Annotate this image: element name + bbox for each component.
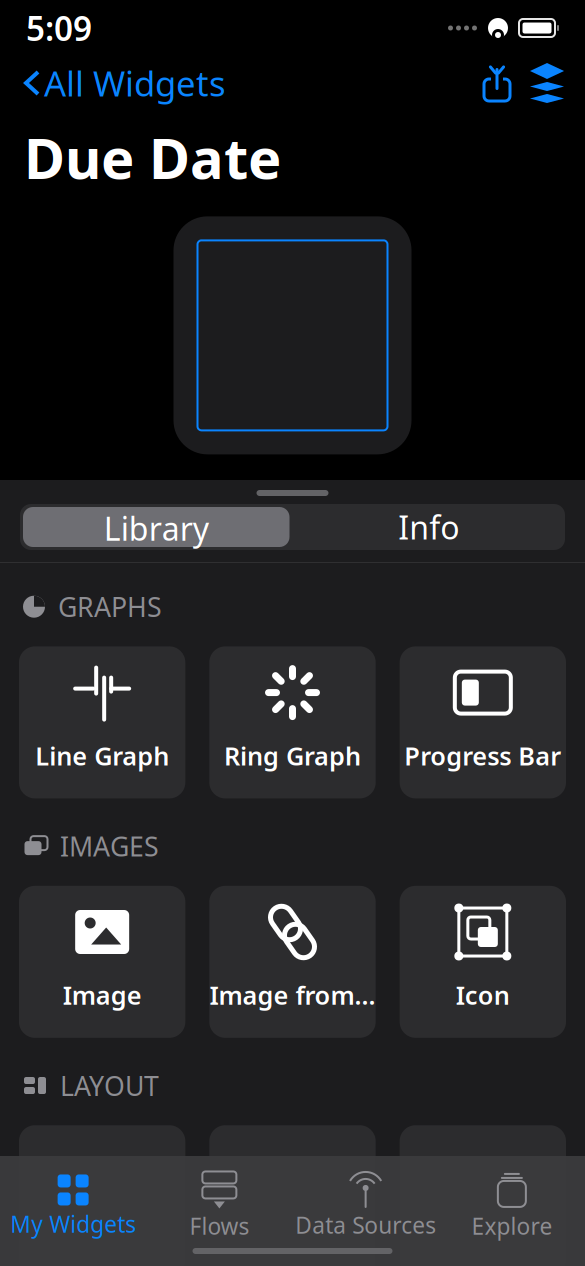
button[interactable]: Library	[20, 504, 292, 550]
button[interactable]: Flows	[146, 1163, 292, 1241]
staticText: LAYOUT	[60, 1068, 159, 1103]
button[interactable]: Share	[473, 65, 521, 101]
staticText: Explore	[471, 1211, 552, 1241]
staticText: Flows	[189, 1211, 249, 1241]
staticText: Line Graph	[35, 739, 169, 772]
staticText: Library	[104, 507, 209, 547]
button[interactable]: Image from...	[209, 886, 376, 1038]
button[interactable]: My Widgets	[0, 1165, 146, 1239]
button[interactable]: Info	[292, 504, 565, 550]
staticText: Data Sources	[295, 1210, 436, 1240]
button[interactable]	[400, 1125, 566, 1266]
staticText: Progress Bar	[404, 739, 561, 772]
staticText: Ring Graph	[224, 739, 361, 772]
staticText: All Widgets	[44, 60, 226, 106]
staticText: My Widgets	[10, 1209, 136, 1239]
staticText: GRAPHS	[58, 589, 162, 624]
button[interactable]: Ring Graph	[209, 646, 376, 798]
staticText: IMAGES	[60, 828, 159, 864]
staticText: Info	[398, 506, 459, 548]
button[interactable]	[209, 1125, 376, 1266]
staticText: Image from...	[209, 978, 375, 1012]
button[interactable]: Data Sources	[292, 1164, 439, 1240]
staticText: Image	[63, 978, 142, 1012]
button[interactable]: Progress Bar	[400, 646, 566, 798]
button[interactable]: Explore	[439, 1163, 585, 1241]
button[interactable]: Icon	[400, 886, 566, 1038]
button[interactable]: Layers	[521, 65, 573, 101]
button[interactable]: Image	[19, 886, 185, 1038]
staticText: Icon	[456, 978, 510, 1012]
staticText: Due Date	[24, 120, 281, 194]
button[interactable]	[19, 1125, 185, 1266]
staticText: 5:09	[26, 6, 92, 50]
button[interactable]: All Widgets	[12, 52, 240, 114]
button[interactable]: Line Graph	[19, 646, 185, 798]
